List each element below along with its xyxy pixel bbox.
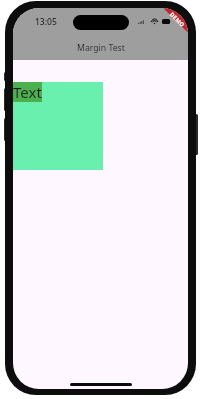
staticText: 13:05 (35, 16, 57, 28)
staticText: Text (13, 82, 42, 102)
staticText: DEMO (169, 10, 186, 28)
staticText: Margin Test (77, 42, 125, 54)
button[interactable]: Text (13, 82, 42, 102)
